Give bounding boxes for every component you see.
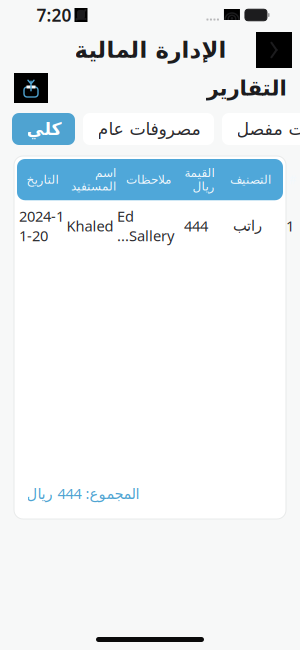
staticText: القيمة ريال [184,166,214,193]
button[interactable]: 2024-11-20 [14,200,286,251]
staticText: 7:20 [36,3,71,26]
button[interactable]: مصروفات مفصل [222,113,300,145]
staticText: Khaled [66,216,113,235]
staticText: مصروفات عام [97,119,200,139]
button[interactable]: Back [256,32,292,68]
button[interactable]: مصروفات عام [83,113,214,145]
staticText: مصروفات مفصل [236,119,300,139]
staticText: كلي [26,119,61,139]
staticText: التصنيف [229,173,270,186]
staticText: 444 [184,216,208,235]
staticText: التقارير [206,76,286,100]
staticText: Ed ...Sallery [117,206,174,245]
button[interactable]: Export [14,73,48,103]
staticText: الإدارة المالية [74,37,226,63]
staticText: ملاحظات [125,173,170,186]
staticText: المجموع: 444 ريال [26,483,139,503]
staticText: راتب [232,217,261,234]
staticText: اسم المستفيد [70,166,115,193]
button[interactable]: كلي [12,113,75,145]
staticText: التاريخ [26,173,58,186]
staticText: 1 [286,216,294,235]
staticText: 2024-11-20 [19,206,64,245]
